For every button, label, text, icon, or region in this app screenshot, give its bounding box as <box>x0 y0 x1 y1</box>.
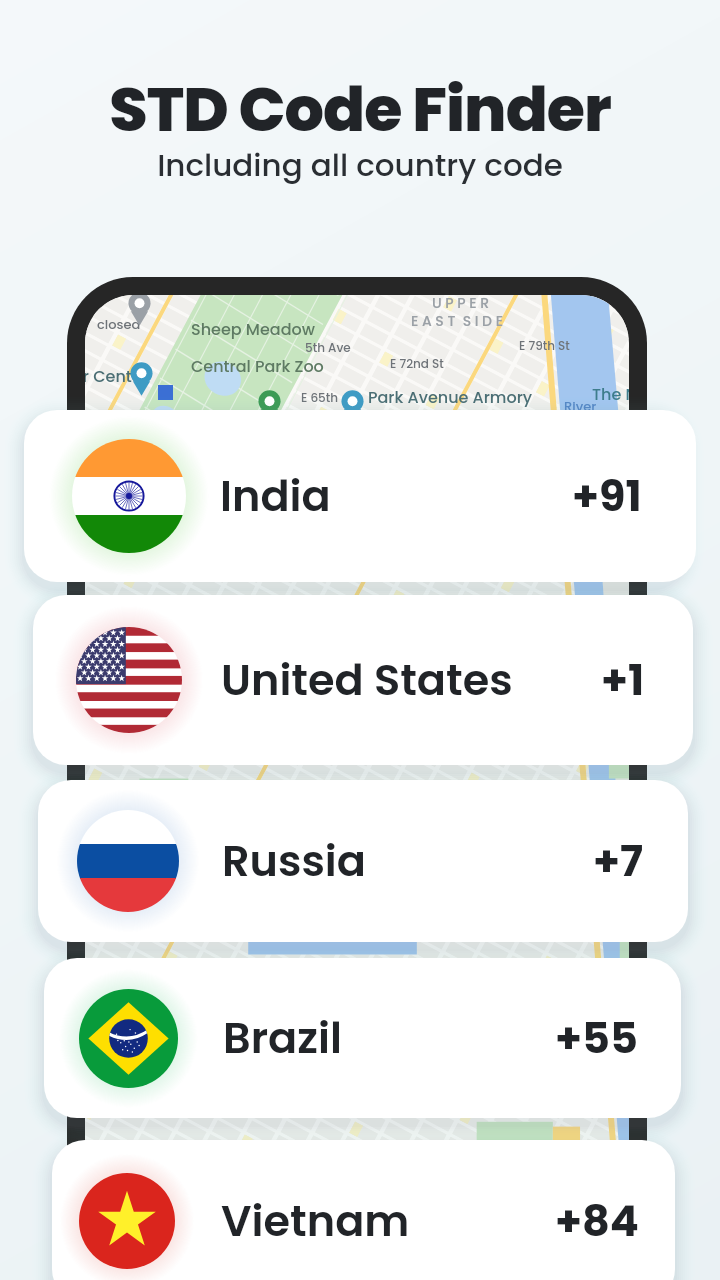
staticText: 5th Ave <box>305 339 351 356</box>
staticText: Vietnam <box>221 1191 410 1251</box>
button[interactable]: India <box>24 410 696 582</box>
staticText: The Noguc <box>592 383 629 405</box>
staticText: Including all country code <box>157 143 563 186</box>
staticText: +7 <box>593 831 644 891</box>
staticText: E 65th <box>301 389 339 406</box>
staticText: er Center <box>85 365 148 387</box>
staticText: India <box>220 466 331 526</box>
staticText: closed <box>97 315 141 333</box>
staticText: River <box>564 397 597 415</box>
staticText: +55 <box>555 1008 638 1068</box>
button[interactable]: Russia <box>38 780 688 942</box>
staticText: +1 <box>601 650 645 710</box>
staticText: Sheep Meadow <box>191 318 315 340</box>
staticText: Park Avenue Armory <box>368 386 533 408</box>
staticText: Central Park Zoo <box>191 355 324 377</box>
button[interactable]: Closed place <box>128 295 151 326</box>
staticText: Brazil <box>223 1008 342 1068</box>
staticText: E 79th St <box>519 337 570 354</box>
button[interactable]: Lincoln Center <box>130 362 153 396</box>
staticText: STD Code Finder <box>109 66 611 153</box>
staticText: +91 <box>572 466 642 526</box>
staticText: E A S T S I D E <box>411 311 503 331</box>
button[interactable]: Park Avenue Armory <box>341 390 364 424</box>
button[interactable]: Vietnam <box>52 1140 675 1280</box>
button[interactable]: United States <box>33 595 693 765</box>
staticText: +84 <box>555 1191 639 1251</box>
staticText: Russia <box>222 831 366 891</box>
staticText: United States <box>221 650 513 710</box>
staticText: U P P E R <box>432 295 490 313</box>
button[interactable]: Brazil <box>44 958 681 1118</box>
button[interactable]: Central Park Zoo <box>258 390 281 424</box>
staticText: E 72nd St <box>390 355 444 372</box>
